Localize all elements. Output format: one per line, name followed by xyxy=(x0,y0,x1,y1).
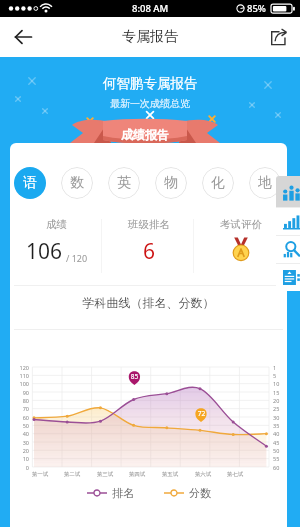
staticText: 60 xyxy=(273,464,280,471)
staticText: 40 xyxy=(10,430,29,437)
staticText: 80 xyxy=(10,397,29,404)
staticText: / 120 xyxy=(66,252,88,264)
button[interactable]: Analysis xyxy=(276,236,300,263)
staticText: 物 xyxy=(164,174,178,192)
staticText: 120 xyxy=(10,364,29,371)
button[interactable]: 成绩 xyxy=(10,211,103,281)
button[interactable]: 排名 xyxy=(87,486,134,500)
staticText: 第七试 xyxy=(223,471,247,478)
staticText: 40 xyxy=(273,430,280,437)
staticText: 0 xyxy=(10,464,29,471)
staticText: 成绩 xyxy=(46,218,67,231)
staticText: 110 xyxy=(10,372,29,379)
staticText: 50 xyxy=(273,447,280,454)
staticText: 何智鹏专属报告 xyxy=(103,75,198,92)
staticText: 20 xyxy=(273,397,280,404)
staticText: 60 xyxy=(10,414,29,421)
button[interactable]: 分数 xyxy=(164,486,211,500)
button[interactable]: Class overview xyxy=(276,176,300,207)
staticText: 15 xyxy=(273,389,280,396)
staticText: 25 xyxy=(273,405,280,412)
staticText: 英 xyxy=(117,174,131,192)
staticText: 85% xyxy=(247,2,266,15)
staticText: 8:08 AM xyxy=(132,2,169,15)
staticText: 35 xyxy=(273,422,280,429)
staticText: 成绩报告 xyxy=(121,127,169,142)
staticText: 106 xyxy=(26,237,63,266)
staticText: 10 xyxy=(10,455,29,462)
staticText: 100 xyxy=(10,380,29,387)
staticText: 90 xyxy=(10,389,29,396)
staticText: 50 xyxy=(10,422,29,429)
staticText: 专属报告 xyxy=(122,28,178,46)
staticText: 数 xyxy=(70,174,84,192)
staticText: 6 xyxy=(143,237,156,266)
staticText: 班级排名 xyxy=(128,218,170,231)
button[interactable]: Score chart xyxy=(276,208,300,235)
button[interactable]: Back xyxy=(8,22,38,52)
staticText: 化 xyxy=(211,174,225,192)
button[interactable]: 化 xyxy=(202,167,234,199)
button[interactable]: 物 xyxy=(155,167,187,199)
staticText: 5 xyxy=(273,372,277,379)
button[interactable]: 语 xyxy=(14,167,46,199)
staticText: 第五试 xyxy=(158,471,182,478)
button[interactable]: Share xyxy=(264,23,292,51)
staticText: 55 xyxy=(273,455,280,462)
button[interactable]: Report xyxy=(276,264,300,291)
staticText: 30 xyxy=(273,414,280,421)
staticText: 45 xyxy=(273,439,280,446)
button[interactable]: 地 xyxy=(249,167,281,199)
staticText: 10 xyxy=(273,380,280,387)
button[interactable]: 数 xyxy=(61,167,93,199)
button[interactable]: 英 xyxy=(108,167,140,199)
staticText: 第二试 xyxy=(60,471,84,478)
staticText: 70 xyxy=(10,405,29,412)
staticText: 学科曲线（排名、分数） xyxy=(10,295,287,310)
staticText: 第三试 xyxy=(93,471,117,478)
staticText: 72 xyxy=(189,409,214,418)
staticText: 1 xyxy=(273,364,277,371)
staticText: 分数 xyxy=(189,486,211,500)
staticText: 考试评价 xyxy=(220,218,262,231)
button[interactable]: 班级排名 xyxy=(103,211,195,281)
staticText: 20 xyxy=(10,447,29,454)
staticText: 30 xyxy=(10,439,29,446)
staticText: 第六试 xyxy=(191,471,215,478)
staticText: 语 xyxy=(23,174,37,192)
staticText: 地 xyxy=(258,174,272,192)
staticText: 最新一次成绩总览 xyxy=(110,97,190,110)
button[interactable]: 考试评价 xyxy=(195,211,287,281)
staticText: 第四试 xyxy=(125,471,149,478)
staticText: 85 xyxy=(122,372,147,381)
staticText: 第一试 xyxy=(28,471,52,478)
staticText: 排名 xyxy=(112,486,134,500)
